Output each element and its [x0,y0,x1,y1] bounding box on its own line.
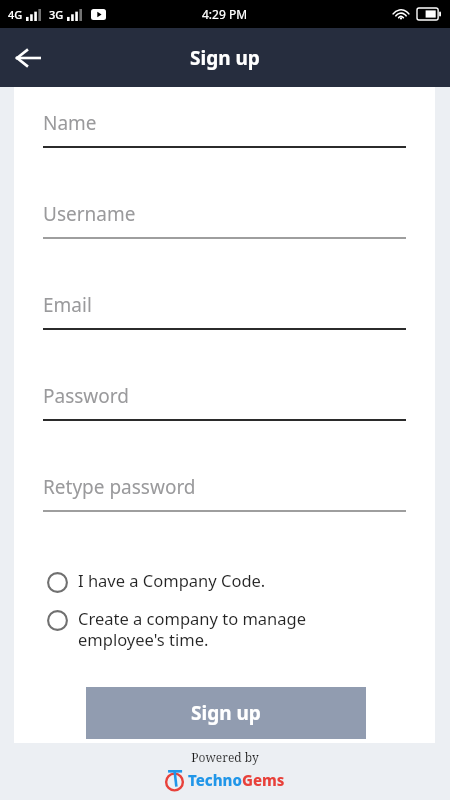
staticText: Name [43,110,97,136]
staticText: Retype password [43,474,196,500]
staticText: 4G [8,7,23,22]
button[interactable]: Email [43,281,406,372]
staticText: 4:29 PM [202,6,248,22]
staticText: I have a Company Code. [78,569,266,591]
staticText: Gems [242,770,285,790]
button[interactable]: Password [43,372,406,463]
button[interactable]: Name [43,99,406,190]
staticText: Username [43,201,136,227]
staticText: Create a company to manage employee's ti… [78,607,307,651]
button[interactable]: Create a company to manage employee's ti… [47,607,415,651]
staticText: Email [43,292,92,318]
button[interactable]: Sign up [86,687,366,739]
staticText: Sign up [191,700,261,726]
staticText: Password [43,383,129,409]
button[interactable]: Username [43,190,406,281]
button[interactable]: I have a Company Code. [47,569,415,593]
staticText: Techno [188,770,242,790]
staticText: 3G [49,7,64,22]
staticText: Sign up [190,45,260,71]
button[interactable]: Retype password [43,463,406,554]
staticText: Powered by [191,749,259,765]
button[interactable]: Back [0,30,56,86]
